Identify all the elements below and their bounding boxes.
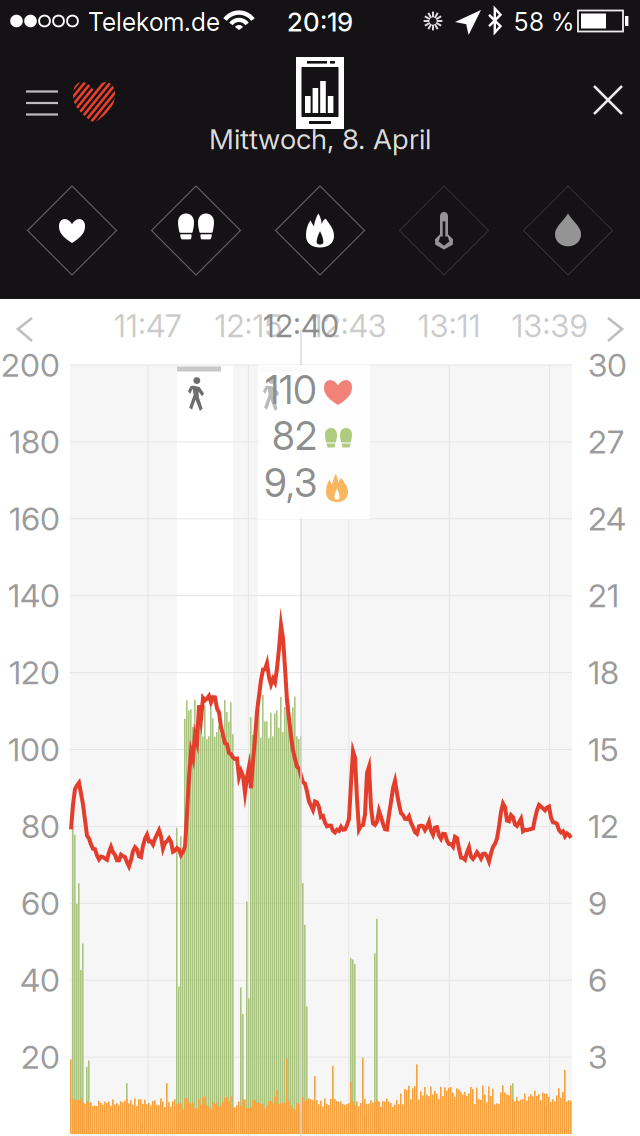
staticText: 15 [588, 730, 619, 769]
staticText: 12:43 [311, 307, 387, 344]
button[interactable]: Menu [0, 0, 80, 140]
button[interactable]: Daily summary [0, 0, 640, 180]
staticText: 180 [9, 422, 60, 461]
staticText: 12:15 [214, 307, 282, 344]
staticText: Telekom.de [88, 7, 220, 37]
staticText: 6 [588, 961, 607, 999]
staticText: 11:47 [114, 307, 182, 344]
staticText: 20:19 [287, 6, 353, 38]
staticText: 160 [9, 499, 60, 538]
staticText: 12:40 [263, 307, 339, 344]
staticText: 140 [8, 576, 60, 615]
staticText: 100 [8, 730, 60, 769]
staticText: 120 [9, 653, 60, 692]
staticText: 24 [588, 499, 626, 538]
button[interactable]: Previous [0, 0, 70, 70]
staticText: 9,3 [264, 460, 317, 506]
staticText: 9 [588, 884, 607, 923]
staticText: 110 [265, 367, 317, 413]
staticText: 200 [1, 346, 60, 384]
staticText: 3 [588, 1038, 607, 1076]
staticText: Mittwoch, 8. April [209, 122, 431, 156]
staticText: 13:11 [418, 307, 481, 344]
staticText: 60 [21, 884, 60, 923]
staticText: 58 % [514, 7, 574, 37]
staticText: 21 [588, 576, 619, 615]
staticText: 13:39 [512, 307, 588, 344]
staticText: 20 [21, 1038, 60, 1076]
button[interactable]: Next [0, 0, 640, 70]
button[interactable]: Heart rate [0, 0, 160, 160]
staticText: 30 [588, 346, 627, 384]
staticText: 12 [588, 807, 619, 846]
staticText: 82 [272, 413, 317, 459]
staticText: 40 [20, 961, 60, 999]
staticText: 80 [21, 807, 60, 846]
staticText: 27 [588, 422, 624, 461]
button[interactable]: Close [0, 0, 64, 160]
staticText: 18 [588, 653, 619, 692]
